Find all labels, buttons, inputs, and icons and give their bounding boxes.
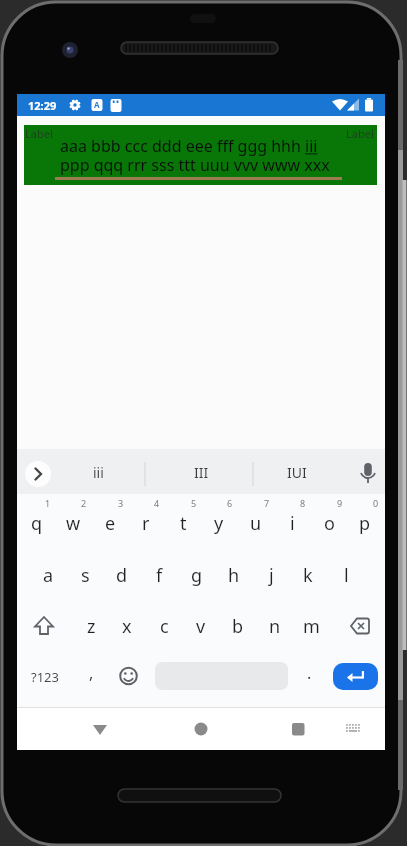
- button[interactable]: [26, 612, 62, 640]
- staticText: l: [344, 563, 349, 588]
- staticText: Label: [25, 126, 53, 141]
- staticText: b: [232, 614, 244, 639]
- staticText: 9: [337, 497, 343, 509]
- staticText: k: [303, 563, 313, 588]
- button[interactable]: i: [275, 506, 309, 540]
- button[interactable]: [282, 707, 314, 750]
- staticText: ?123: [31, 668, 59, 686]
- button[interactable]: v: [184, 609, 218, 643]
- staticText: iii: [93, 463, 104, 482]
- staticText: ,: [89, 662, 94, 684]
- staticText: q: [31, 511, 43, 536]
- button[interactable]: n: [258, 609, 292, 643]
- button[interactable]: o: [312, 506, 346, 540]
- staticText: v: [196, 614, 206, 639]
- staticText: o: [324, 511, 335, 536]
- button[interactable]: z: [74, 609, 108, 643]
- button[interactable]: [55, 133, 349, 183]
- button[interactable]: [185, 707, 217, 750]
- button[interactable]: [333, 663, 378, 690]
- button[interactable]: y: [202, 506, 236, 540]
- button[interactable]: r: [129, 506, 163, 540]
- staticText: 6: [227, 497, 233, 509]
- staticText: p: [359, 511, 371, 536]
- staticText: 3: [118, 497, 124, 509]
- button[interactable]: l: [329, 558, 363, 592]
- button[interactable]: a: [31, 558, 65, 592]
- button[interactable]: j: [254, 558, 288, 592]
- button[interactable]: [340, 612, 376, 640]
- staticText: g: [191, 563, 203, 588]
- button[interactable]: [25, 461, 51, 487]
- button[interactable]: x: [110, 609, 144, 643]
- button[interactable]: IUI: [277, 462, 317, 482]
- staticText: z: [87, 614, 96, 639]
- staticText: a: [43, 563, 54, 588]
- button[interactable]: q: [20, 506, 54, 540]
- button[interactable]: s: [68, 558, 102, 592]
- staticText: n: [269, 614, 281, 639]
- staticText: ppp qqq rrr sss ttt uuu vvv www xxx: [60, 154, 330, 176]
- button[interactable]: [84, 707, 116, 750]
- button[interactable]: ,: [79, 660, 103, 686]
- button[interactable]: III: [181, 462, 221, 482]
- staticText: 5: [191, 497, 197, 509]
- staticText: y: [214, 511, 224, 536]
- staticText: 0: [373, 497, 379, 509]
- button[interactable]: .: [297, 660, 321, 686]
- button[interactable]: w: [56, 506, 90, 540]
- button[interactable]: m: [294, 609, 328, 643]
- staticText: A: [94, 99, 100, 110]
- staticText: j: [269, 563, 274, 588]
- staticText: x: [122, 614, 132, 639]
- staticText: h: [228, 563, 240, 588]
- staticText: 2: [81, 497, 87, 509]
- staticText: 7: [264, 497, 270, 509]
- staticText: III: [194, 463, 209, 482]
- staticText: e: [105, 511, 116, 536]
- button[interactable]: h: [217, 558, 251, 592]
- button[interactable]: g: [180, 558, 214, 592]
- button[interactable]: d: [105, 558, 139, 592]
- button[interactable]: [336, 707, 368, 750]
- staticText: u: [250, 511, 262, 536]
- button[interactable]: ?123: [23, 664, 67, 690]
- button[interactable]: b: [221, 609, 255, 643]
- button[interactable]: iii: [78, 462, 118, 482]
- button[interactable]: k: [291, 558, 325, 592]
- button[interactable]: e: [93, 506, 127, 540]
- button[interactable]: p: [348, 506, 382, 540]
- staticText: t: [180, 511, 187, 536]
- staticText: r: [142, 511, 150, 536]
- staticText: 4: [154, 497, 160, 509]
- button[interactable]: f: [142, 558, 176, 592]
- staticText: IUI: [287, 463, 307, 482]
- staticText: 12:29: [28, 98, 57, 113]
- button[interactable]: c: [147, 609, 181, 643]
- staticText: m: [303, 614, 320, 639]
- staticText: 8: [300, 497, 306, 509]
- staticText: Label: [346, 126, 374, 141]
- staticText: c: [160, 614, 169, 639]
- button[interactable]: u: [239, 506, 273, 540]
- staticText: f: [156, 563, 163, 588]
- button[interactable]: t: [166, 506, 200, 540]
- staticText: d: [116, 563, 128, 588]
- staticText: .: [307, 662, 312, 684]
- staticText: w: [66, 511, 81, 536]
- staticText: i: [290, 511, 295, 536]
- staticText: 1: [45, 497, 51, 509]
- staticText: aaa bbb ccc ddd eee fff ggg hhh iii: [60, 135, 318, 157]
- staticText: s: [81, 563, 90, 588]
